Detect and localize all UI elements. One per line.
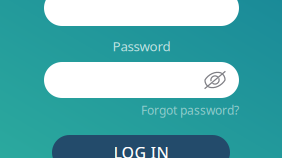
staticText: LOG IN [113, 142, 168, 158]
staticText: Forgot password? [141, 102, 239, 118]
button[interactable] [44, 0, 239, 26]
button[interactable] [44, 62, 239, 98]
staticText: Password [112, 37, 170, 55]
button[interactable]: Forgot password? [44, 104, 239, 116]
button[interactable]: LOG IN [52, 135, 230, 158]
